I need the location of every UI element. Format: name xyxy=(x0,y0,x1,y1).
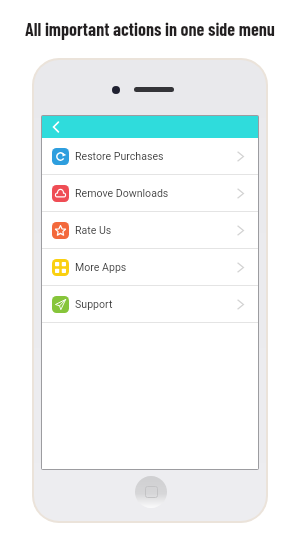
button[interactable]: Restore Purchases xyxy=(42,138,258,174)
staticText: All important actions in one side menu xyxy=(25,18,275,40)
staticText: Rate Us xyxy=(75,224,112,236)
button[interactable]: Rate Us xyxy=(42,212,258,248)
staticText: Remove Downloads xyxy=(75,187,169,199)
button[interactable]: Back xyxy=(45,116,67,138)
staticText: More Apps xyxy=(75,261,127,273)
staticText: Restore Purchases xyxy=(75,150,164,162)
staticText: Support xyxy=(75,298,113,310)
button[interactable]: Remove Downloads xyxy=(42,175,258,211)
button[interactable]: Support xyxy=(42,286,258,322)
button[interactable]: More Apps xyxy=(42,249,258,285)
